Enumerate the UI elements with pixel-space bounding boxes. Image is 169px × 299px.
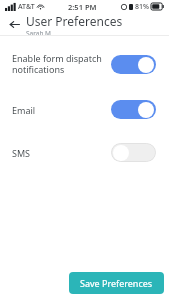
staticText: Sarah M. (26, 29, 53, 35)
staticText: 2:51 PM (68, 2, 97, 12)
button[interactable]: Back (6, 16, 22, 32)
button[interactable]: Enable form dispatch notifications (0, 48, 169, 80)
staticText: Email (12, 104, 105, 116)
staticText: SMS (12, 147, 105, 159)
staticText: 81% (135, 2, 149, 12)
staticText: Save Preferences (80, 277, 153, 289)
staticText: AT&T (18, 2, 35, 12)
button[interactable]: SMS (0, 139, 169, 166)
button[interactable]: Email (0, 96, 169, 123)
staticText: User Preferences (26, 13, 123, 29)
button[interactable]: On (111, 55, 156, 74)
button[interactable]: On (111, 100, 156, 119)
staticText: Enable form dispatch notifications (12, 52, 105, 76)
button[interactable]: Save Preferences (69, 272, 164, 294)
button[interactable]: Off (111, 143, 156, 162)
